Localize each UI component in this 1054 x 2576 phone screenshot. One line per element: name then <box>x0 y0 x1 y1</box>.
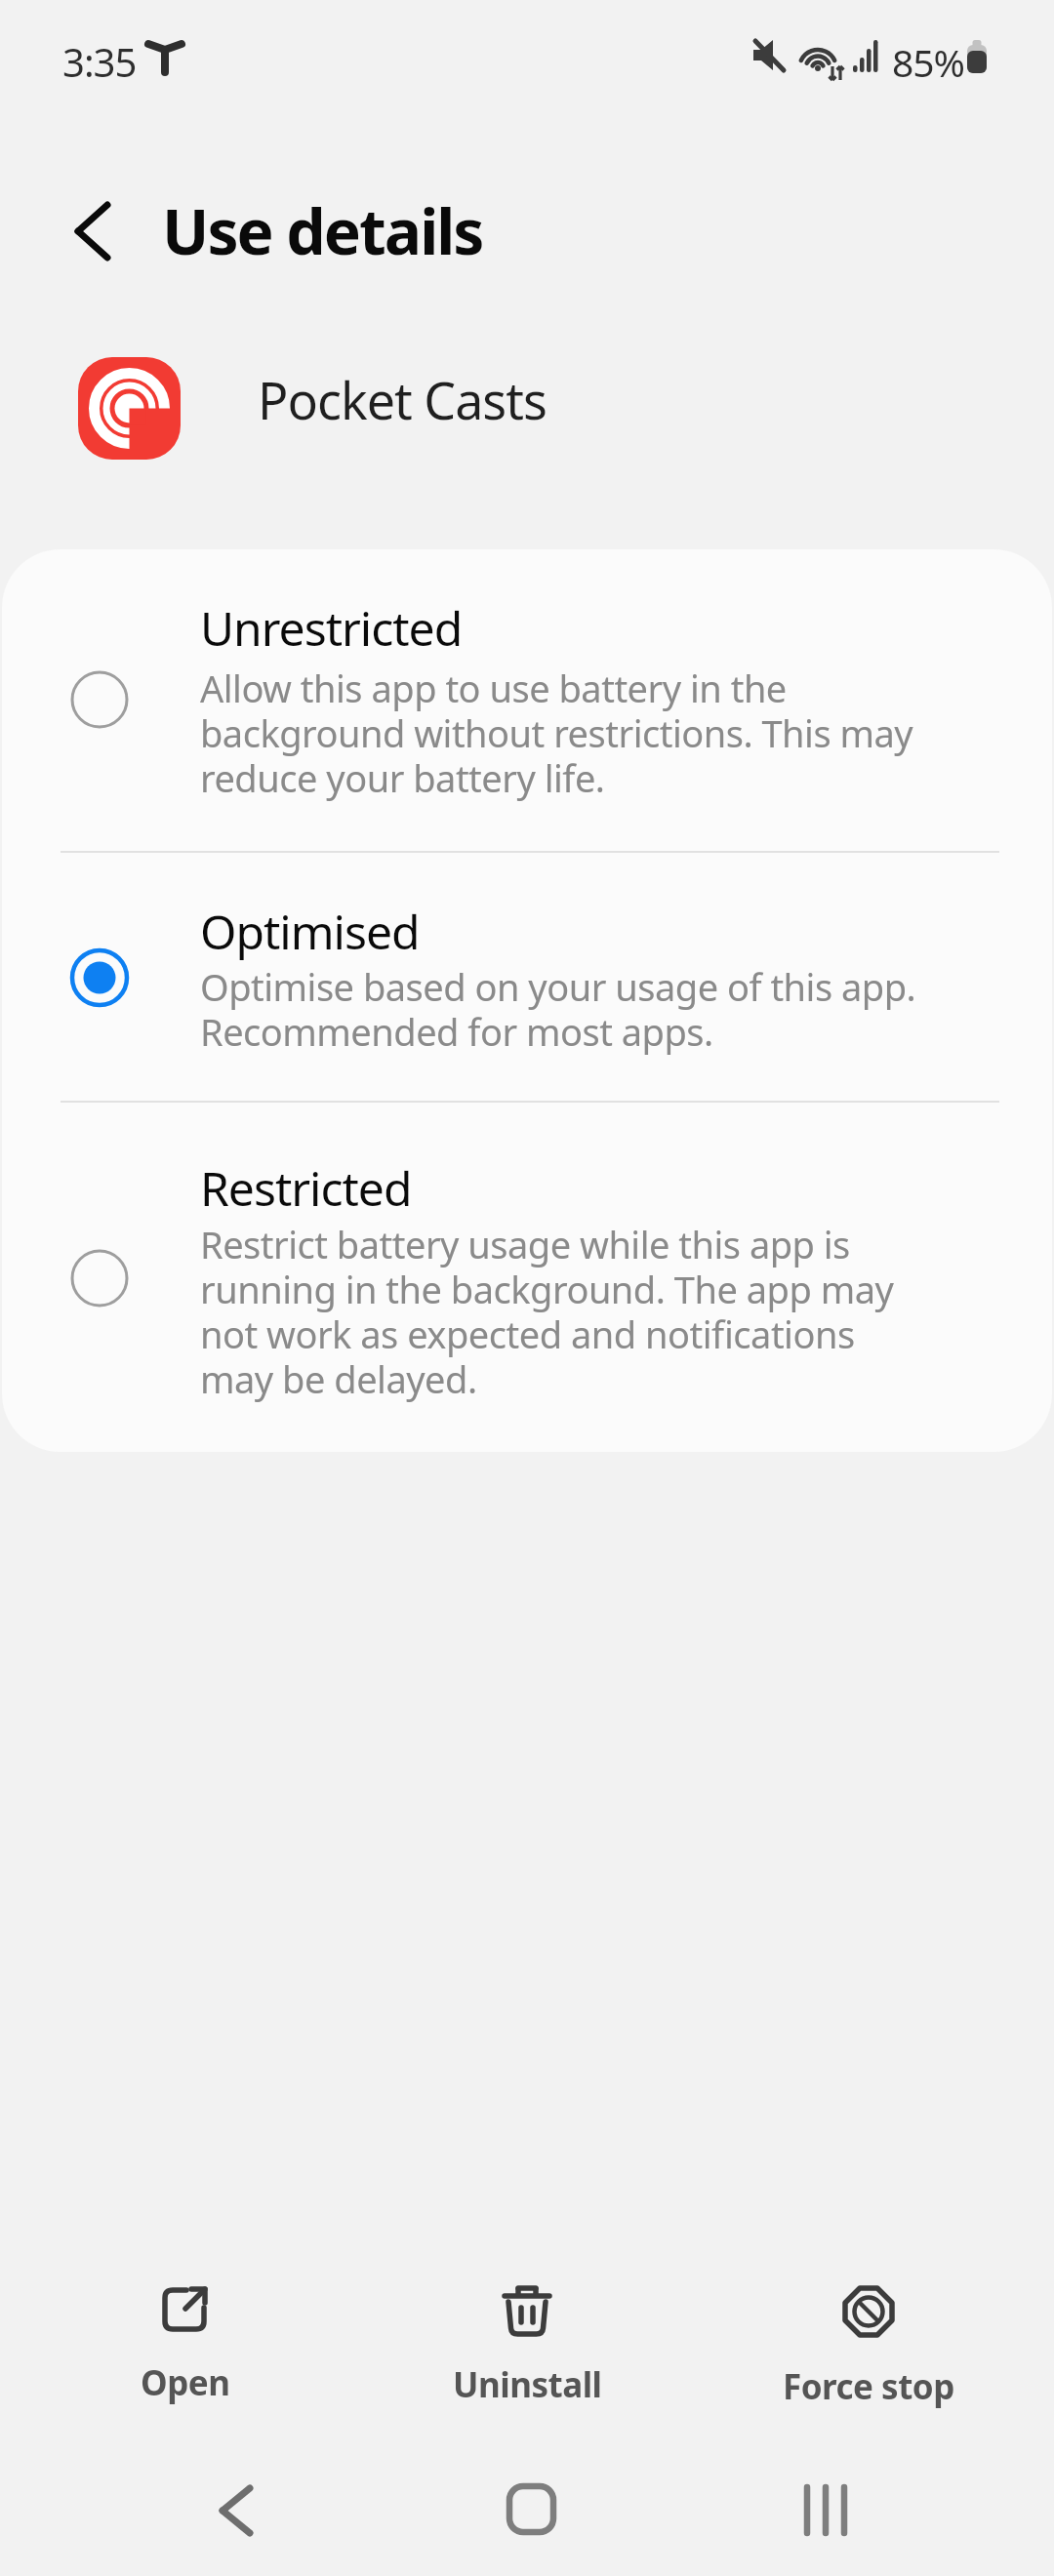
button[interactable] <box>792 2476 863 2545</box>
staticText: Restricted <box>200 1156 412 1220</box>
staticText: Optimised <box>200 900 420 963</box>
button[interactable] <box>2 551 1052 851</box>
staticText: Open <box>141 2359 230 2406</box>
staticText: Restrict battery usage while this app is… <box>200 1219 894 1404</box>
button[interactable]: Open <box>39 2285 332 2406</box>
button[interactable] <box>57 195 129 267</box>
button[interactable] <box>500 2476 564 2545</box>
staticText: Pocket Casts <box>258 365 547 434</box>
button[interactable] <box>2 853 1052 1101</box>
button[interactable] <box>2 1103 1052 1452</box>
button[interactable]: Force stop <box>722 2285 1015 2410</box>
staticText: Use details <box>162 188 483 273</box>
staticText: Uninstall <box>453 2361 602 2408</box>
staticText: 85% <box>892 36 965 88</box>
button[interactable] <box>201 2476 271 2545</box>
staticText: Optimise based on your usage of this app… <box>200 961 916 1057</box>
staticText: Allow this app to use battery in the bac… <box>200 663 913 803</box>
staticText: 3:35 <box>62 35 137 88</box>
staticText: Force stop <box>783 2363 954 2410</box>
button[interactable]: Uninstall <box>381 2285 673 2408</box>
staticText: Unrestricted <box>200 596 463 660</box>
